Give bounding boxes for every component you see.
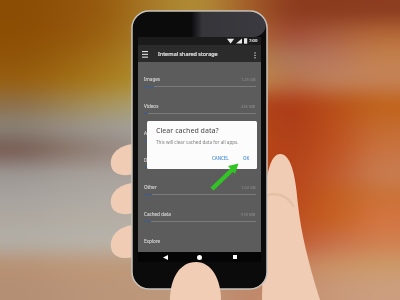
button[interactable]: Navigation menu [138, 47, 152, 61]
button[interactable]: Documents [138, 149, 261, 176]
button[interactable]: Back [158, 252, 173, 262]
staticText: CANCEL [212, 155, 229, 161]
button[interactable]: CANCEL [209, 154, 232, 162]
button[interactable]: Other [138, 176, 261, 203]
staticText: 1.25 GB [241, 77, 256, 82]
staticText: Cached data [144, 211, 171, 217]
button[interactable]: Cached data [138, 203, 261, 230]
staticText: Images [144, 76, 161, 82]
staticText: 124 MB [241, 158, 256, 163]
staticText: 236 MB [241, 104, 256, 109]
staticText: Explore [144, 238, 161, 244]
staticText: Internal shared storage [158, 50, 218, 57]
button[interactable]: More options [248, 47, 261, 60]
staticText: Other [144, 184, 157, 190]
button[interactable]: Recent apps [227, 252, 242, 262]
button[interactable]: Videos [138, 95, 261, 122]
staticText: Audio [144, 130, 157, 136]
staticText: This will clear cached data for all apps… [156, 139, 239, 145]
staticText: Clear cached data? [156, 126, 219, 136]
button[interactable]: Audio [138, 122, 261, 149]
staticText: 7:00 [249, 38, 258, 44]
staticText: Documents [144, 157, 169, 163]
button[interactable]: OK [240, 154, 253, 162]
staticText: OK [243, 155, 250, 161]
staticText: 518 MB [241, 212, 256, 217]
button[interactable]: Home [192, 252, 207, 262]
staticText: Videos [144, 103, 159, 109]
staticText: 1.02 GB [241, 185, 256, 190]
button[interactable]: Images [138, 68, 261, 95]
button[interactable]: Explore [138, 230, 261, 252]
